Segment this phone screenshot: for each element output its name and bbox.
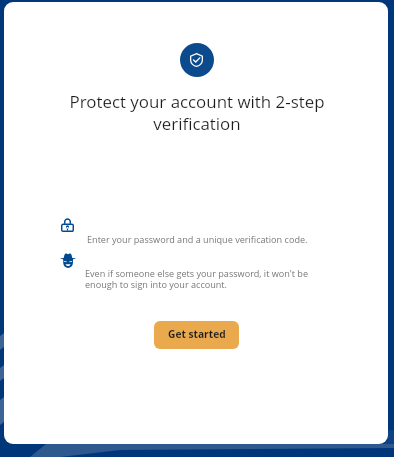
staticText: Enter your password and a unique verific… bbox=[87, 233, 308, 245]
button[interactable]: Get started bbox=[154, 321, 239, 349]
other: Incognito bbox=[60, 253, 76, 268]
staticText: Get started bbox=[168, 327, 226, 341]
staticText: Even if someone else gets your password,… bbox=[85, 267, 317, 291]
staticText: Protect your account with 2-step verific… bbox=[47, 90, 347, 135]
other: Password lock bbox=[61, 218, 74, 232]
other: Security shield bbox=[190, 53, 203, 67]
